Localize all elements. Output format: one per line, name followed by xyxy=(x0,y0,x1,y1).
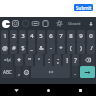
staticText: 5 xyxy=(39,32,43,40)
staticText: 4 xyxy=(30,32,34,40)
staticText: 6 xyxy=(49,32,53,40)
button[interactable]: / xyxy=(87,42,95,54)
button[interactable]: - xyxy=(47,42,55,54)
button[interactable]: 1 xyxy=(1,30,8,42)
staticText: $ xyxy=(21,44,25,52)
staticText: ) xyxy=(80,44,82,52)
staticText: & xyxy=(39,44,44,52)
button[interactable]: Home xyxy=(32,84,64,96)
button[interactable]: " xyxy=(25,54,33,66)
button[interactable]: 4 xyxy=(28,30,35,42)
button[interactable]: 2 xyxy=(10,30,17,42)
button[interactable]: ( xyxy=(67,42,75,54)
staticText: , xyxy=(18,68,20,77)
button[interactable]: ) xyxy=(77,42,85,54)
button[interactable]: @ xyxy=(1,42,8,54)
staticText: : xyxy=(48,56,50,65)
staticText: @ xyxy=(2,44,8,52)
staticText: =\< xyxy=(4,57,11,63)
button[interactable]: ? xyxy=(72,54,79,66)
staticText: + xyxy=(59,44,63,52)
button[interactable]: * xyxy=(15,54,23,66)
button[interactable]: 0 xyxy=(87,30,95,42)
button[interactable]: 8 xyxy=(67,30,75,42)
button[interactable]: Recent apps xyxy=(64,84,96,96)
button[interactable]: $ xyxy=(19,42,26,54)
button[interactable]: ' xyxy=(35,54,43,66)
button[interactable]: Space xyxy=(31,66,70,78)
staticText: " xyxy=(28,56,31,65)
staticText: Gboard xyxy=(68,21,81,26)
button[interactable]: Enter xyxy=(80,66,95,78)
button[interactable]: ! xyxy=(63,54,70,66)
staticText: # xyxy=(12,44,16,52)
staticText: . xyxy=(74,68,76,77)
button[interactable]: 9 xyxy=(77,30,85,42)
button[interactable]: Settings xyxy=(55,19,64,28)
button[interactable]: Submit xyxy=(74,4,93,11)
staticText: 9 xyxy=(79,32,83,40)
button[interactable]: Back xyxy=(0,84,32,96)
button[interactable]: GIF xyxy=(31,19,40,28)
button[interactable]: Stickers xyxy=(11,19,20,28)
button[interactable]: 7 xyxy=(57,30,65,42)
staticText: 2 xyxy=(12,32,16,40)
button[interactable]: & xyxy=(37,42,45,54)
staticText: ' xyxy=(38,56,40,65)
staticText: 7 xyxy=(59,32,63,40)
staticText: 8 xyxy=(69,32,73,40)
staticText: ABC xyxy=(3,69,12,75)
staticText: _ xyxy=(30,44,33,52)
staticText: - xyxy=(50,44,52,52)
button[interactable]: Hide keyboard xyxy=(86,19,95,28)
button[interactable]: ; xyxy=(54,54,61,66)
button[interactable]: _ xyxy=(28,42,35,54)
staticText: ! xyxy=(66,56,68,65)
staticText: ? xyxy=(74,56,77,65)
button[interactable]: Themes xyxy=(21,19,30,28)
button[interactable]: ABC xyxy=(1,66,14,78)
staticText: Submit xyxy=(76,5,92,11)
button[interactable]: Emoji xyxy=(23,66,29,78)
staticText: 3 xyxy=(21,32,25,40)
button[interactable]: 5 xyxy=(37,30,45,42)
staticText: / xyxy=(90,44,93,52)
staticText: ( xyxy=(70,44,72,52)
button[interactable]: Gboard xyxy=(67,21,82,26)
button[interactable]: + xyxy=(57,42,65,54)
button[interactable]: =\< xyxy=(1,54,13,66)
staticText: 0 xyxy=(89,32,93,40)
button[interactable]: 6 xyxy=(47,30,55,42)
button[interactable]: # xyxy=(10,42,17,54)
staticText: ; xyxy=(57,56,59,65)
button[interactable]: Clipboard xyxy=(41,19,50,28)
button[interactable]: Backspace xyxy=(81,54,95,66)
staticText: 1 xyxy=(3,32,7,40)
button[interactable]: , xyxy=(16,66,21,78)
button[interactable]: 3 xyxy=(19,30,26,42)
button[interactable]: : xyxy=(45,54,52,66)
button[interactable]: Google xyxy=(1,19,10,28)
button[interactable]: . xyxy=(72,66,78,78)
staticText: * xyxy=(17,56,21,65)
